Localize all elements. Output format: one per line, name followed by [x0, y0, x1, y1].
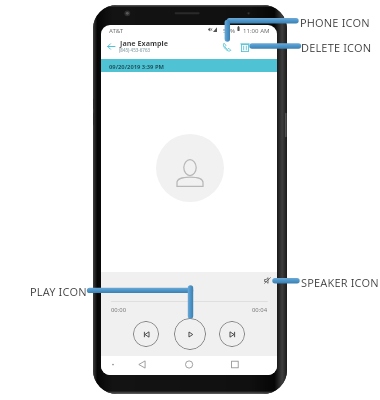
staticText: 11:00 AM	[243, 26, 270, 34]
staticText: PHONE ICON	[300, 15, 370, 30]
button[interactable]: Delete	[237, 34, 253, 59]
staticText: Jane Example	[120, 38, 168, 48]
button[interactable]: Next	[219, 321, 245, 347]
staticText: 00:00	[111, 306, 127, 314]
button[interactable]: Play	[174, 318, 206, 350]
staticText: 50%	[223, 26, 236, 34]
button[interactable]: Call	[219, 34, 235, 59]
staticText: PLAY ICON	[30, 284, 87, 299]
staticText: 00:04	[252, 306, 268, 314]
button[interactable]: Speaker	[262, 275, 272, 285]
button[interactable]: Previous	[133, 321, 159, 347]
staticText: 09/20/2019 3:39 PM	[109, 63, 164, 71]
staticText: AT&T	[109, 26, 124, 34]
staticText: DELETE ICON	[301, 40, 372, 55]
button[interactable]: Back	[103, 34, 119, 59]
staticText: SPEAKER ICON	[301, 275, 379, 290]
button[interactable]: System navigation	[101, 356, 277, 375]
staticText: (845) 453-6763	[119, 47, 151, 53]
